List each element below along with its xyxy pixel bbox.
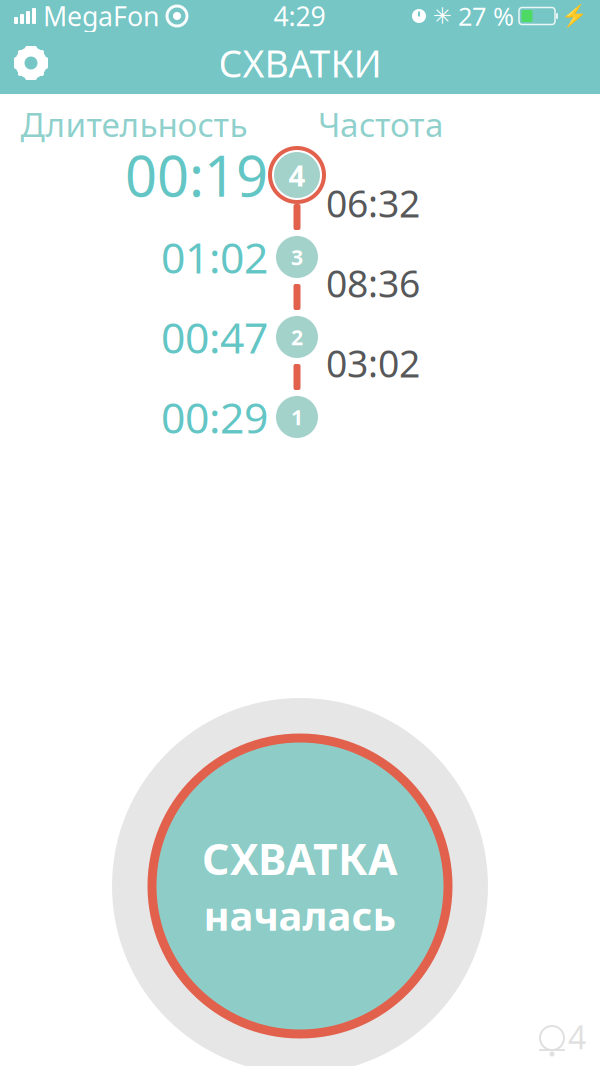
staticText: 2 xyxy=(291,323,303,351)
staticText: 4 xyxy=(288,155,305,194)
staticText: 3 xyxy=(291,243,303,271)
staticText: 06:32 xyxy=(326,178,420,228)
staticText: 03:02 xyxy=(326,338,420,388)
staticText: 27 % xyxy=(458,0,514,33)
staticText: 4:29 xyxy=(273,0,325,34)
staticText: 1 xyxy=(291,403,303,431)
staticText: 00:19 xyxy=(125,138,268,212)
staticText: Частота xyxy=(318,102,444,146)
staticText: началась xyxy=(203,889,396,942)
button[interactable]: Уведомления xyxy=(537,1015,600,1066)
button[interactable]: Настройки xyxy=(0,32,62,94)
staticText: 08:36 xyxy=(326,258,420,308)
staticText: Длительность xyxy=(20,102,247,146)
staticText: ⚡ xyxy=(561,4,588,28)
staticText: 4 xyxy=(568,1015,586,1058)
staticText: MegaFon xyxy=(43,0,159,34)
staticText: 01:02 xyxy=(161,229,268,285)
staticText: СХВАТКИ xyxy=(218,38,381,88)
staticText: СХВАТКА xyxy=(202,830,398,887)
staticText: 00:47 xyxy=(161,309,268,365)
button[interactable]: Схватка началась xyxy=(145,731,455,1041)
staticText: 00:29 xyxy=(161,389,268,445)
staticText: ✳ xyxy=(433,3,452,29)
